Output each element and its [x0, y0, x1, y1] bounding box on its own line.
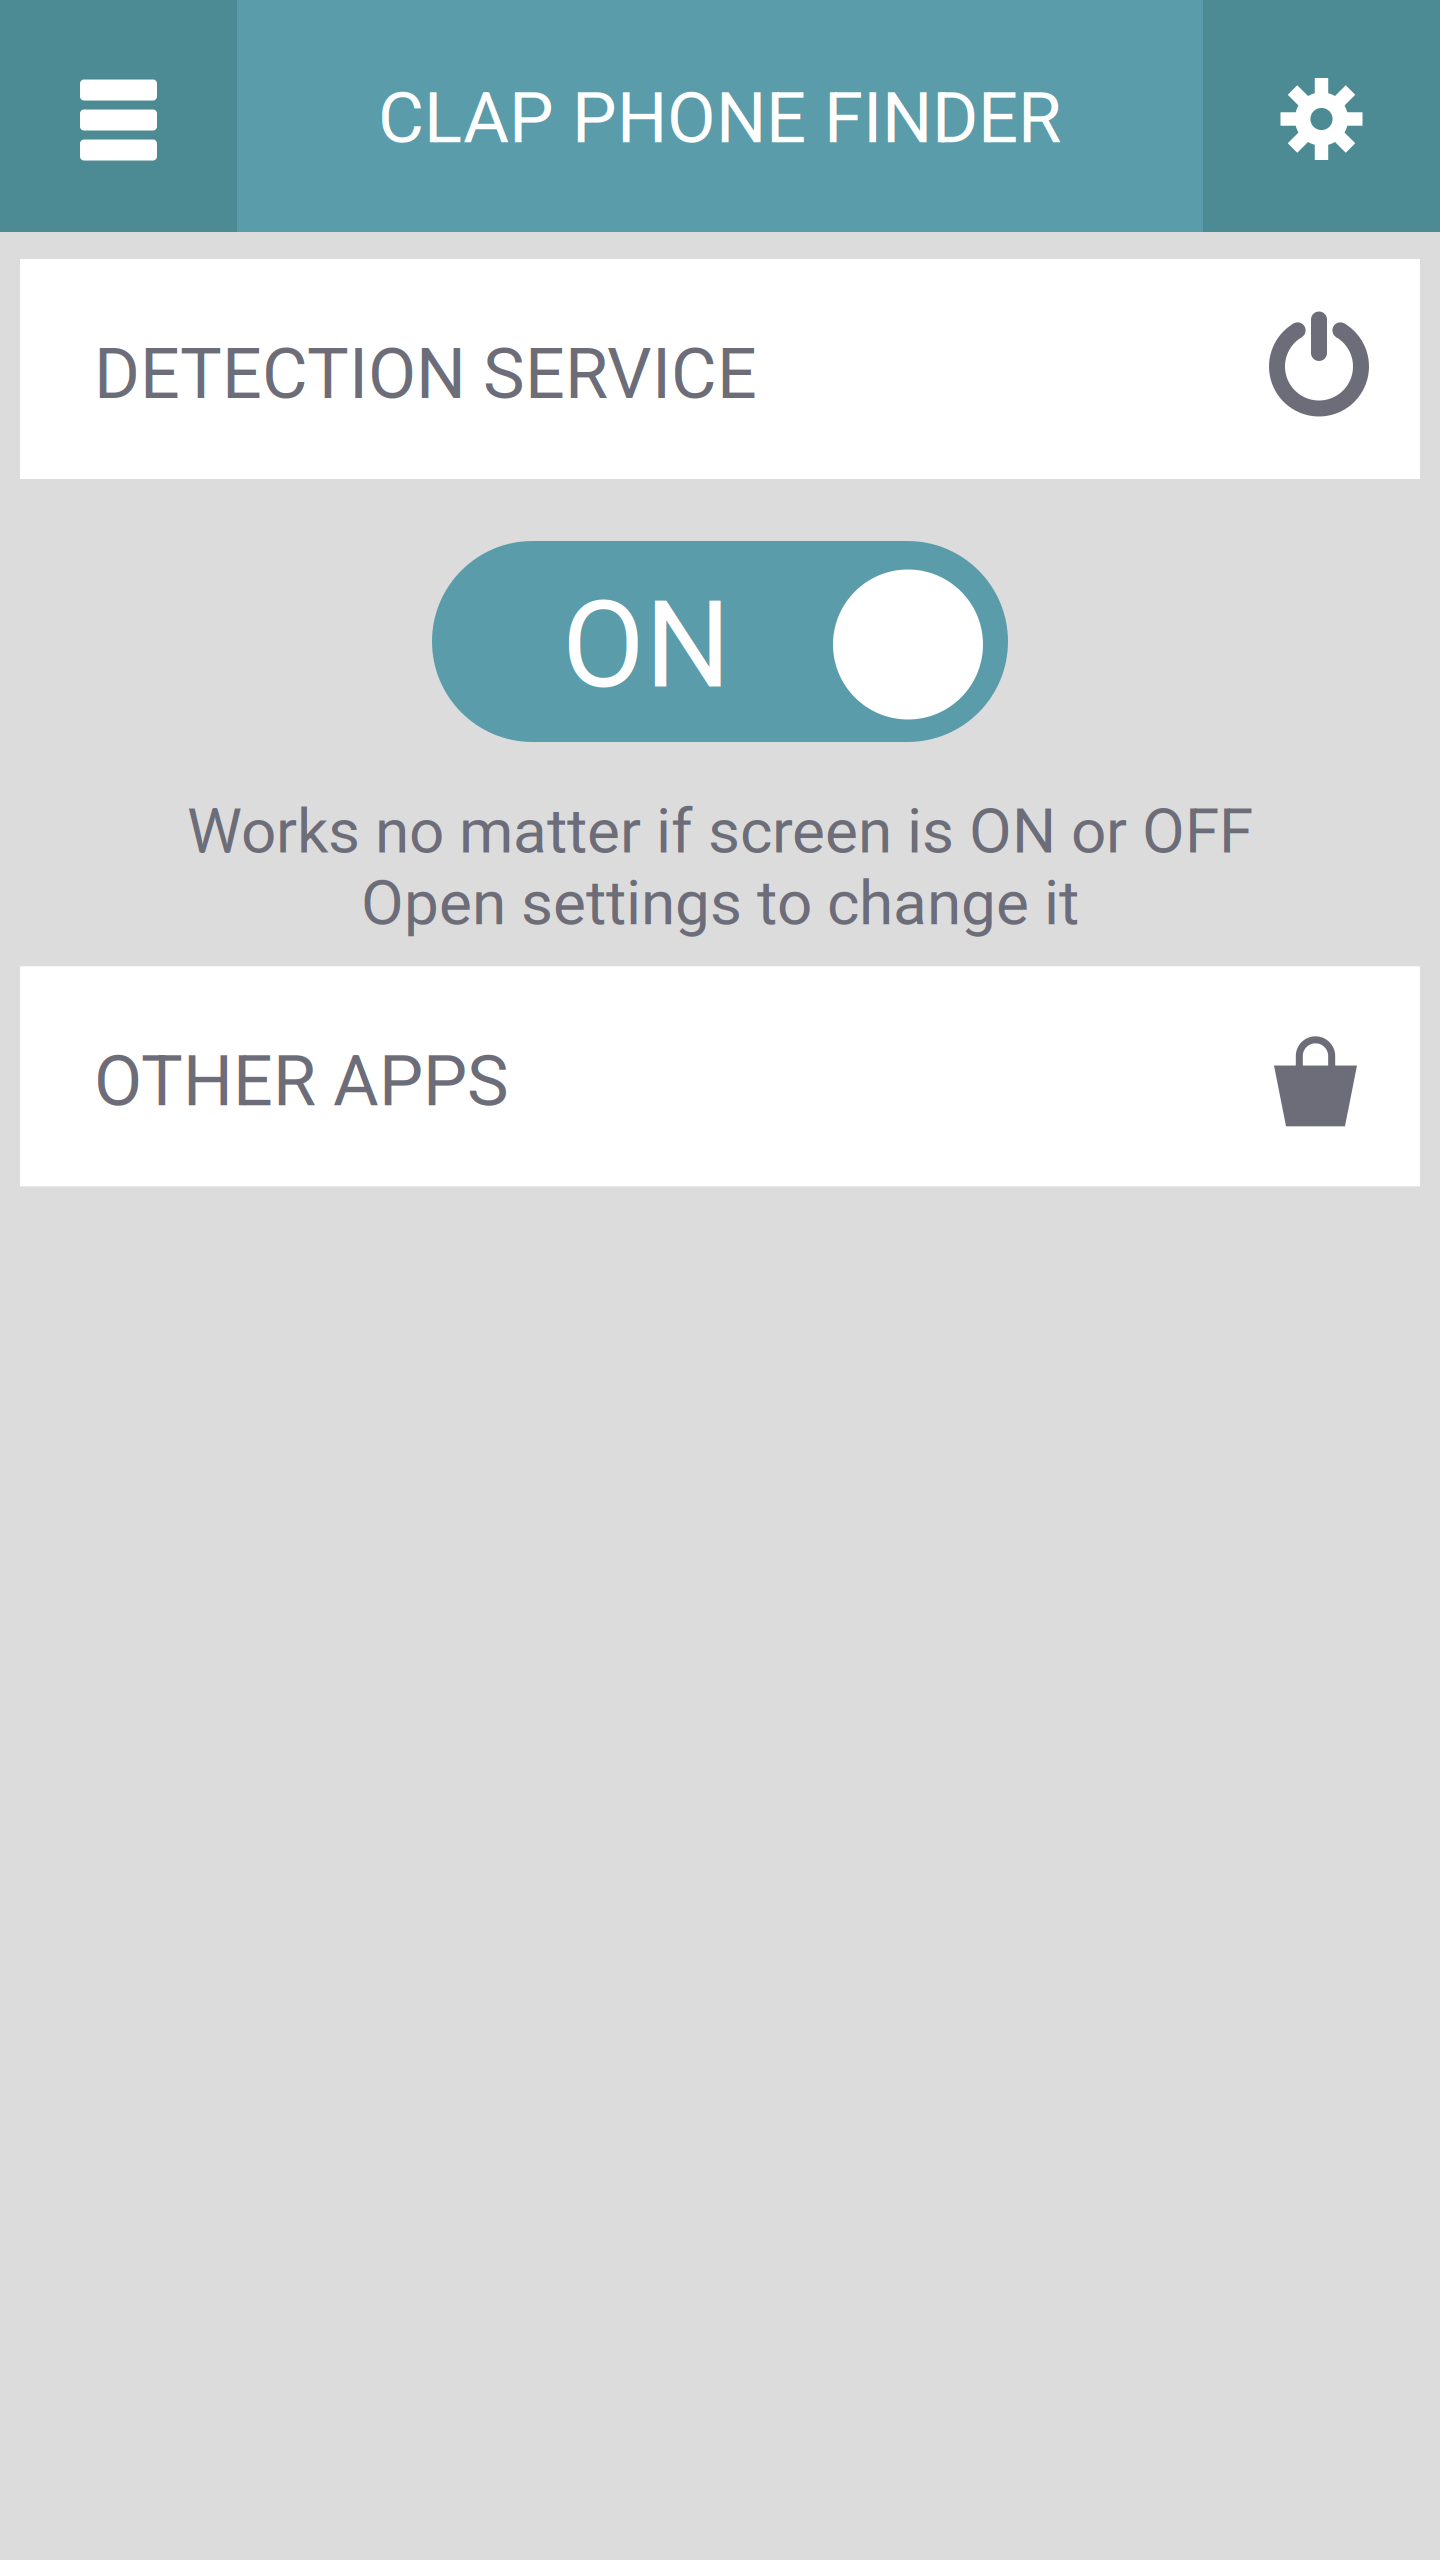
button[interactable]: Settings: [1203, 0, 1440, 232]
staticText: DETECTION SERVICE: [94, 333, 757, 415]
staticText: CLAP PHONE FINDER: [378, 77, 1062, 159]
staticText: OTHER APPS: [94, 1040, 509, 1122]
staticText: Works no matter if screen is ON or OFF: [187, 795, 1253, 868]
button[interactable]: Detection service on: [432, 541, 1008, 742]
button[interactable]: Menu: [0, 0, 237, 232]
staticText: Open settings to change it: [361, 867, 1079, 939]
button[interactable]: OTHER APPS: [20, 966, 1420, 1186]
staticText: ON: [562, 575, 731, 716]
button[interactable]: DETECTION SERVICE: [20, 259, 1420, 479]
